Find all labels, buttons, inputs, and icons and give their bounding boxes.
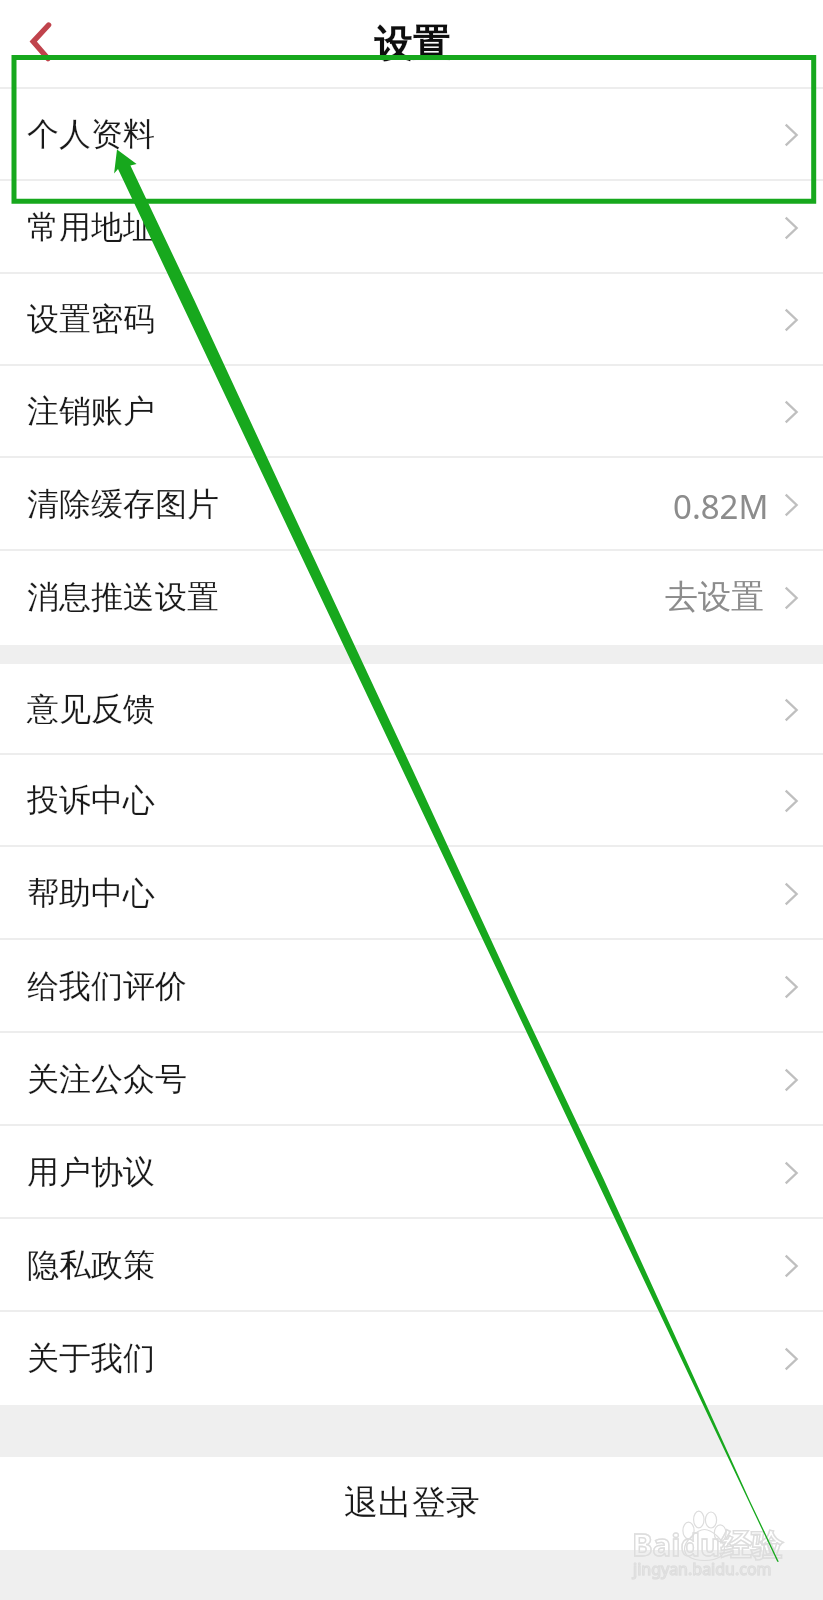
staticText: 个人资料 <box>27 114 155 154</box>
button[interactable]: 投诉中心 <box>0 755 823 847</box>
button[interactable]: Back <box>8 8 74 78</box>
staticText: Baidu经验 <box>632 1523 783 1565</box>
staticText: 意见反馈 <box>27 689 155 729</box>
button[interactable]: 个人资料 <box>0 89 823 181</box>
button[interactable]: 退出登录 <box>0 1457 823 1550</box>
staticText: 用户协议 <box>27 1152 155 1192</box>
staticText: 关注公众号 <box>27 1059 187 1099</box>
button[interactable]: 清除缓存图片 <box>0 458 823 551</box>
button[interactable]: 关于我们 <box>0 1312 823 1405</box>
button[interactable]: 常用地址 <box>0 181 823 274</box>
staticText: 投诉中心 <box>27 780 155 820</box>
button[interactable]: 注销账户 <box>0 366 823 458</box>
button[interactable]: 给我们评价 <box>0 940 823 1033</box>
button[interactable]: 帮助中心 <box>0 847 823 940</box>
button[interactable]: 隐私政策 <box>0 1219 823 1312</box>
staticText: 设置密码 <box>27 299 155 339</box>
staticText: 退出登录 <box>344 1481 480 1524</box>
staticText: 常用地址 <box>27 207 155 247</box>
button[interactable]: 关注公众号 <box>0 1033 823 1126</box>
button[interactable]: 用户协议 <box>0 1126 823 1219</box>
staticText: 给我们评价 <box>27 966 187 1006</box>
staticText: jingyan.baidu.com <box>633 1558 772 1580</box>
staticText: 去设置 <box>665 576 764 618</box>
button[interactable]: 设置密码 <box>0 274 823 366</box>
staticText: 0.82M <box>673 484 769 529</box>
staticText: 清除缓存图片 <box>27 484 219 524</box>
button[interactable]: 意见反馈 <box>0 664 823 755</box>
staticText: 关于我们 <box>27 1338 155 1378</box>
staticText: 隐私政策 <box>27 1245 155 1285</box>
staticText: 设置 <box>374 20 450 68</box>
staticText: 注销账户 <box>27 391 155 431</box>
staticText: 帮助中心 <box>27 873 155 913</box>
button[interactable]: 消息推送设置 <box>0 551 823 645</box>
staticText: 消息推送设置 <box>27 577 219 617</box>
